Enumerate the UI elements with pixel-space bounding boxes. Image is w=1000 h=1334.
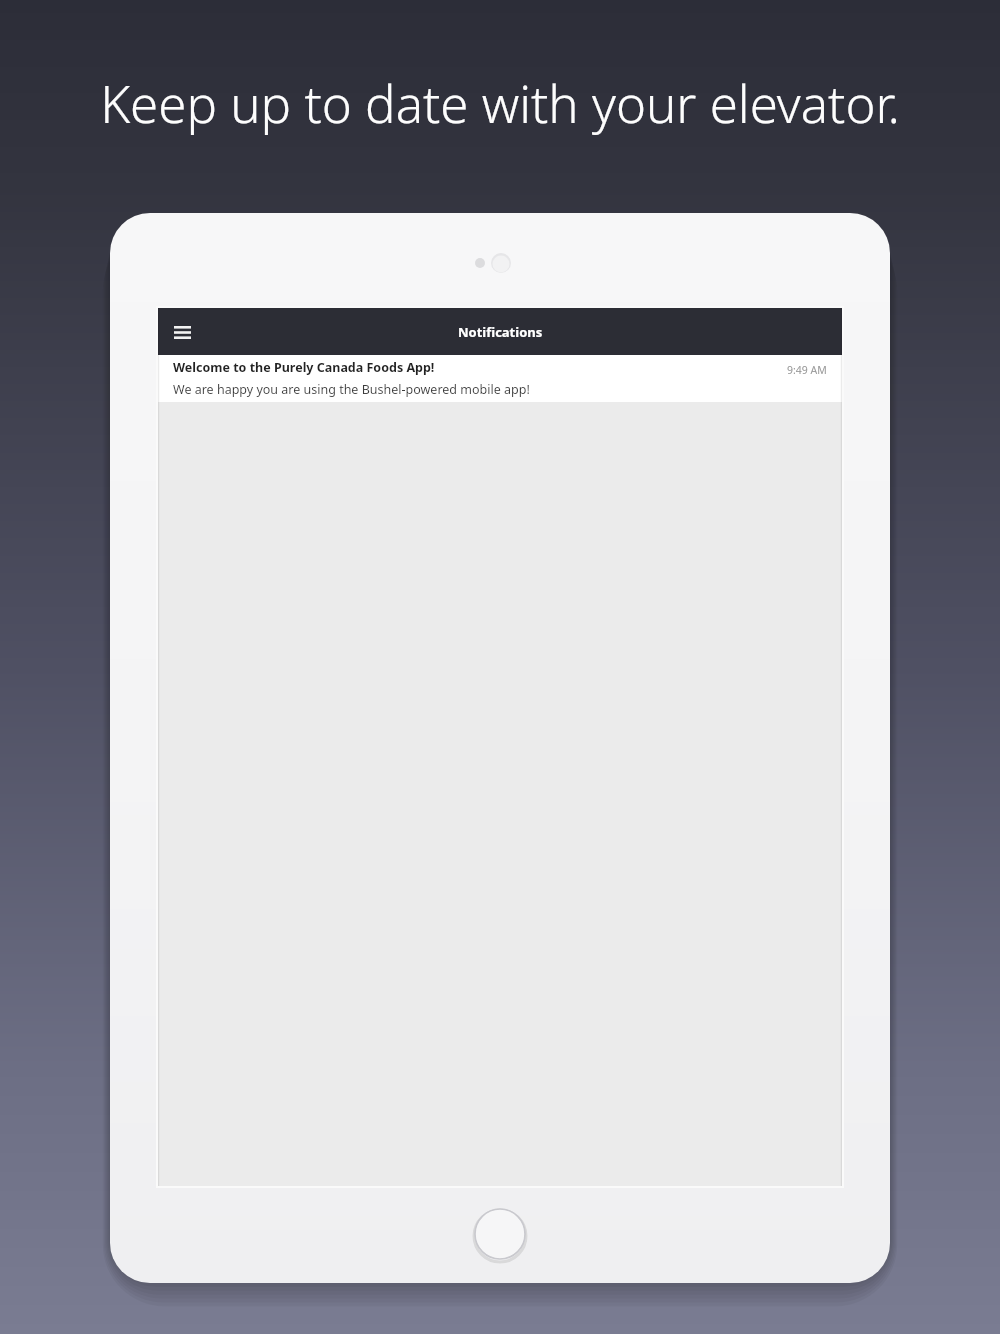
staticText: Keep up to date with your elevator. xyxy=(0,68,1000,137)
button[interactable]: Home xyxy=(472,1206,528,1262)
staticText: Notifications xyxy=(458,323,543,341)
staticText: Welcome to the Purely Canada Foods App! xyxy=(173,359,435,376)
button[interactable]: Open navigation menu xyxy=(166,316,198,348)
staticText: 9:49 AM xyxy=(787,363,827,377)
staticText: We are happy you are using the Bushel-po… xyxy=(173,381,530,398)
button[interactable]: Welcome to the Purely Canada Foods App! xyxy=(158,355,842,402)
